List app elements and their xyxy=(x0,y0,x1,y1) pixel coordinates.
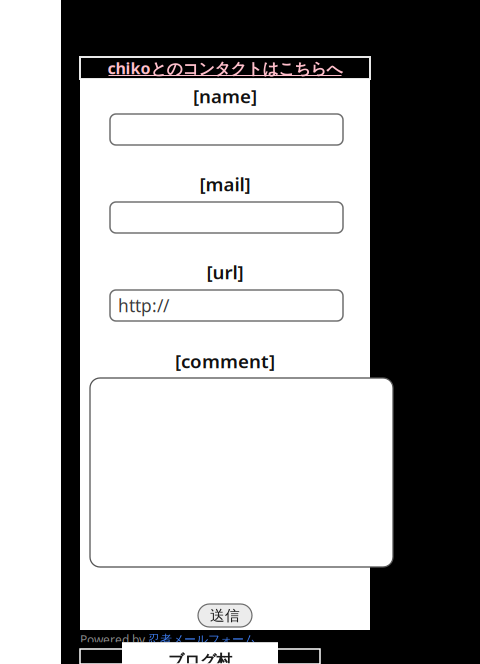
staticText: http:// xyxy=(118,294,169,317)
button[interactable]: 送信 xyxy=(198,604,252,627)
button[interactable]: 忍者メールフォーム xyxy=(148,632,256,647)
staticText: Powered by xyxy=(80,631,148,647)
staticText: 送信 xyxy=(210,606,240,624)
button[interactable]: chikoとのコンタクトはこちらへ xyxy=(80,57,370,79)
staticText: 忍者メールフォーム xyxy=(148,632,256,647)
staticText: [url] xyxy=(206,260,243,284)
button[interactable]: comment xyxy=(90,378,393,567)
staticText: [name] xyxy=(193,84,257,108)
button[interactable]: name xyxy=(110,114,343,145)
staticText: [comment] xyxy=(175,349,275,373)
staticText: chikoとのコンタクトはこちらへ xyxy=(107,57,342,79)
button[interactable]: url xyxy=(110,290,343,321)
staticText: [mail] xyxy=(199,172,250,196)
staticText: ブログ村 xyxy=(168,651,232,664)
button[interactable]: Advertisement banner xyxy=(80,649,320,664)
button[interactable]: mail xyxy=(110,202,343,233)
